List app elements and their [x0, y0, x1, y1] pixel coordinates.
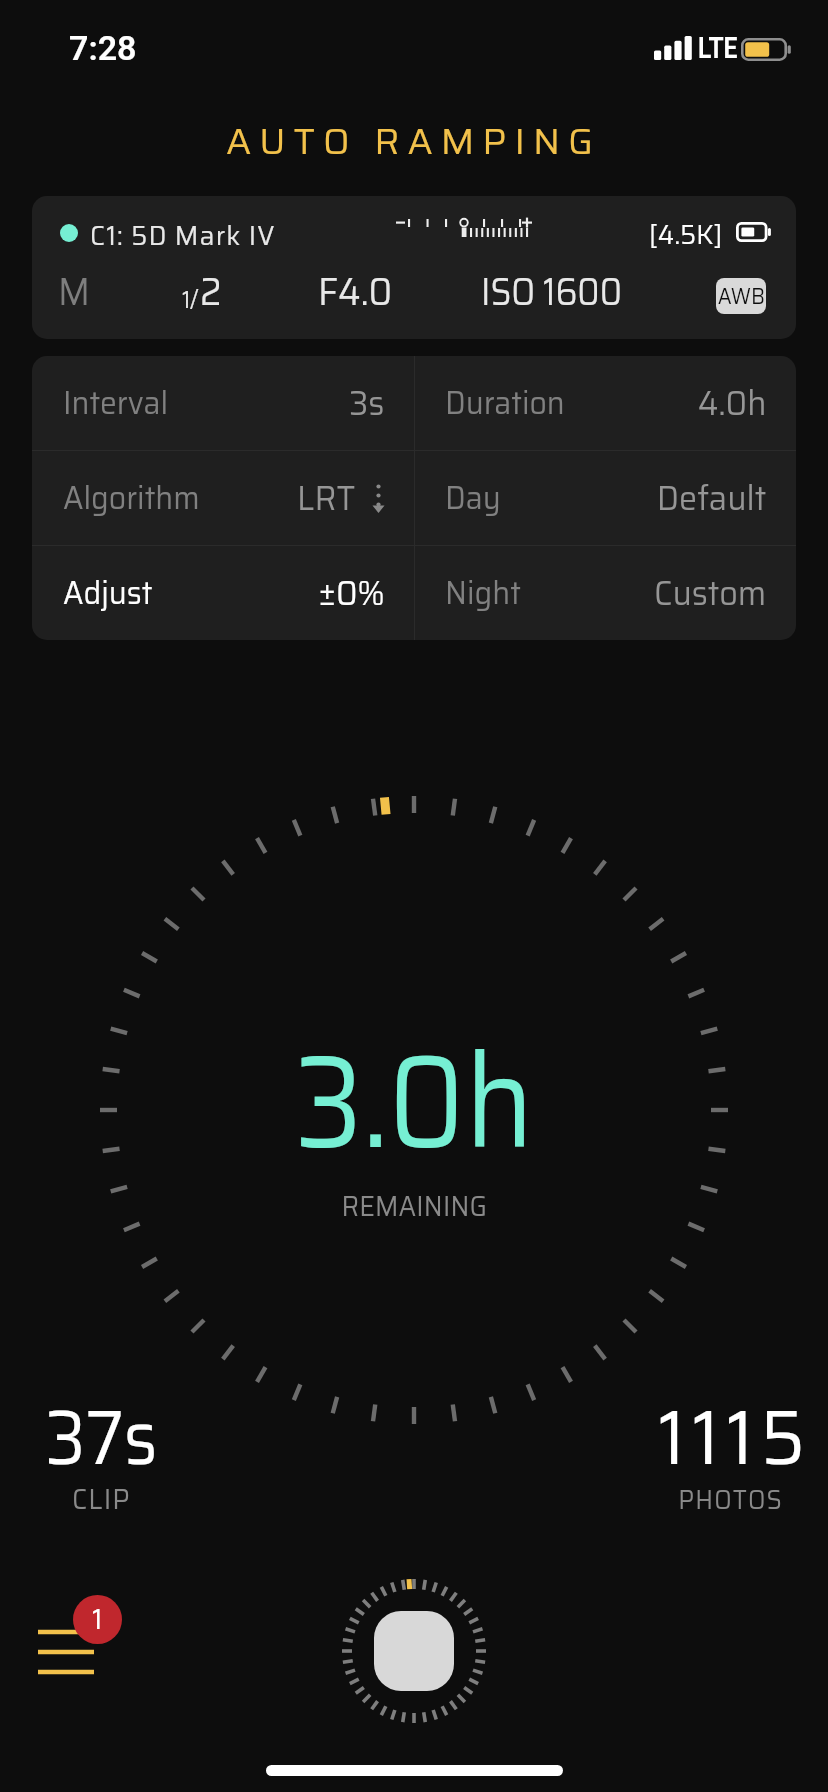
staticText: AWB	[718, 279, 764, 314]
staticText: 1115	[658, 1377, 813, 1498]
staticText: M	[58, 262, 91, 322]
staticText: Adjust	[63, 567, 153, 619]
staticText: ±0%	[318, 566, 385, 620]
staticText: AUTO RAMPING	[226, 112, 602, 170]
staticText: CLIP	[72, 1476, 131, 1522]
staticText: 7:28	[69, 28, 137, 68]
staticText: Day	[445, 472, 501, 524]
button[interactable]: Interval	[32, 356, 414, 450]
staticText: LRT	[297, 471, 356, 525]
staticText: 2	[200, 262, 222, 322]
staticText: 3.0h	[294, 998, 534, 1204]
button[interactable]: Duration	[414, 356, 796, 450]
staticText: Duration	[445, 377, 565, 429]
button[interactable]: Adjust	[32, 546, 414, 640]
staticText: C1: 5D Mark IV	[90, 214, 276, 256]
staticText: LTE	[698, 31, 738, 65]
button[interactable]: C1: 5D Mark IV	[32, 196, 796, 339]
button[interactable]: Menu	[20, 1588, 132, 1700]
staticText: 4.0h	[698, 376, 767, 430]
staticText: 3s	[349, 376, 385, 430]
staticText: Algorithm	[63, 472, 200, 524]
staticText: Default	[657, 471, 767, 525]
staticText: Interval	[63, 377, 169, 429]
staticText: ISO 1600	[481, 262, 623, 322]
staticText: PHOTOS	[678, 1479, 783, 1520]
staticText: Night	[445, 567, 521, 619]
staticText: REMAINING	[341, 1183, 487, 1229]
staticText: 1	[92, 1597, 103, 1641]
staticText: F4.0	[318, 262, 392, 322]
button[interactable]: Algorithm	[32, 451, 414, 545]
staticText: [4.5K]	[649, 213, 723, 255]
staticText: 37s	[45, 1377, 158, 1498]
button[interactable]: Night	[414, 546, 796, 640]
staticText: 1/	[182, 281, 199, 319]
staticText: Custom	[654, 566, 767, 620]
button[interactable]: Shutter	[342, 1579, 486, 1723]
button[interactable]: Day	[414, 451, 796, 545]
